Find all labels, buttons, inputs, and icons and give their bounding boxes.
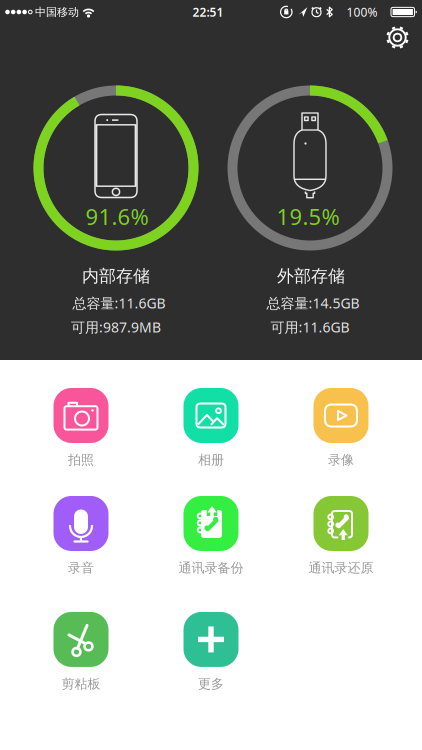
button[interactable]: 剪粘板 bbox=[16, 612, 146, 692]
staticText: 更多 bbox=[198, 676, 224, 692]
staticText: 内部存储 bbox=[82, 266, 150, 286]
button[interactable]: Settings bbox=[379, 19, 415, 55]
button[interactable]: 拍照 bbox=[16, 388, 146, 468]
staticText: 91.6% bbox=[85, 202, 148, 231]
staticText: 总容量:11.6GB bbox=[72, 294, 165, 312]
staticText: 总容量:14.5GB bbox=[266, 294, 359, 312]
staticText: 可用:987.9MB bbox=[71, 318, 161, 336]
button[interactable]: 通讯录还原 bbox=[276, 496, 406, 576]
staticText: 中国移动 bbox=[35, 5, 79, 19]
button[interactable]: 相册 bbox=[146, 388, 276, 468]
button[interactable]: 录音 bbox=[16, 496, 146, 576]
staticText: 外部存储 bbox=[277, 266, 345, 286]
staticText: 相册 bbox=[198, 452, 224, 468]
staticText: 拍照 bbox=[68, 452, 94, 468]
staticText: 可用:11.6GB bbox=[270, 318, 349, 336]
button[interactable]: 通讯录备份 bbox=[146, 496, 276, 576]
staticText: 100% bbox=[346, 4, 377, 20]
staticText: 通讯录备份 bbox=[178, 560, 243, 576]
staticText: 录音 bbox=[68, 560, 94, 576]
staticText: 19.5% bbox=[276, 202, 339, 231]
staticText: 22:51 bbox=[192, 4, 223, 20]
staticText: 录像 bbox=[328, 452, 354, 468]
button[interactable]: 录像 bbox=[276, 388, 406, 468]
staticText: 剪粘板 bbox=[61, 676, 100, 692]
button[interactable]: 更多 bbox=[146, 612, 276, 692]
staticText: 通讯录还原 bbox=[308, 560, 373, 576]
